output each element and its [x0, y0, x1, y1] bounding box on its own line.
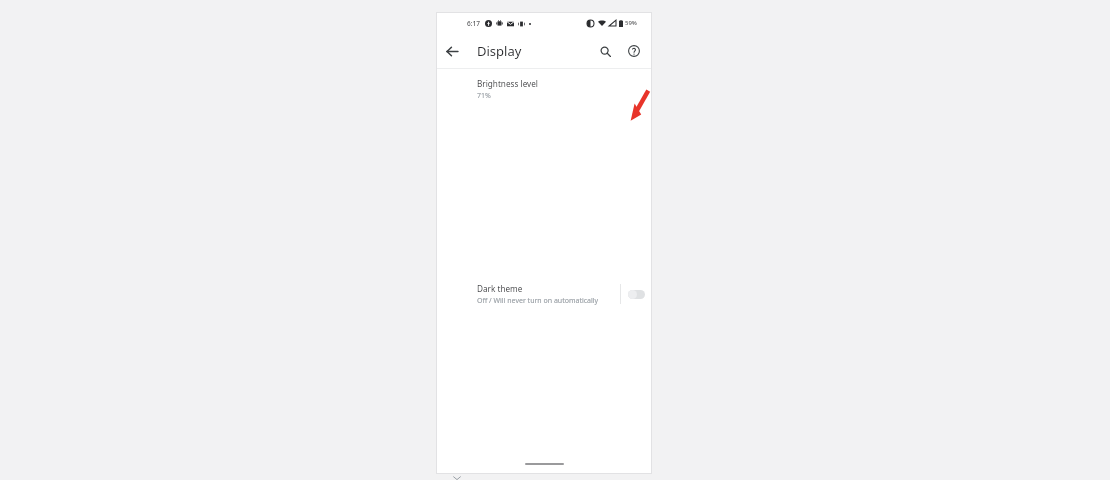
staticText: Dark theme [477, 283, 523, 294]
staticText: 71% [477, 91, 491, 101]
button[interactable]: Brightness level [437, 76, 651, 103]
button[interactable]: Dark theme toggle, off [621, 115, 651, 473]
staticText: Off / Will never turn on automatically [477, 296, 599, 306]
button[interactable]: Back [440, 39, 464, 63]
staticText: 59% [625, 19, 637, 27]
staticText: Display [477, 42, 522, 60]
button[interactable]: Search [594, 40, 616, 62]
staticText: Brightness level [477, 78, 538, 89]
button[interactable]: Help [623, 40, 645, 62]
button[interactable]: Dark theme [437, 115, 651, 473]
staticText: 6:17 [467, 19, 480, 28]
